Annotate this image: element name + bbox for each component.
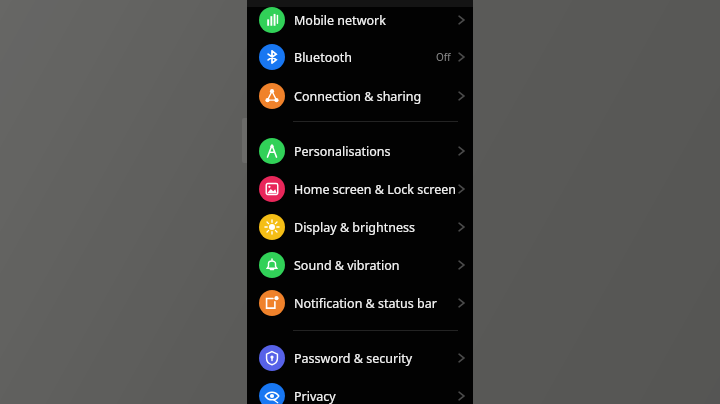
staticText: Privacy xyxy=(294,388,336,404)
staticText: Password & security xyxy=(294,350,413,367)
button[interactable]: Sound & vibration xyxy=(247,246,473,284)
staticText: Off xyxy=(436,50,451,64)
button[interactable]: Notification & status bar xyxy=(247,284,473,322)
button[interactable]: Password & security xyxy=(247,339,473,377)
button[interactable]: Mobile network xyxy=(247,1,473,39)
staticText: Bluetooth xyxy=(294,49,353,66)
staticText: Personalisations xyxy=(294,143,391,160)
staticText: Sound & vibration xyxy=(294,257,400,274)
button[interactable]: Bluetooth xyxy=(247,38,473,76)
staticText: Mobile network xyxy=(294,12,386,29)
button[interactable]: Personalisations xyxy=(247,132,473,170)
staticText: Connection & sharing xyxy=(294,88,422,105)
button[interactable]: Privacy xyxy=(247,377,473,404)
staticText: Notification & status bar xyxy=(294,295,437,312)
button[interactable]: Home screen & Lock screen xyxy=(247,170,473,208)
staticText: Home screen & Lock screen xyxy=(294,181,456,198)
button[interactable]: Display & brightness xyxy=(247,208,473,246)
button[interactable]: Connection & sharing xyxy=(247,77,473,115)
staticText: Display & brightness xyxy=(294,219,416,236)
